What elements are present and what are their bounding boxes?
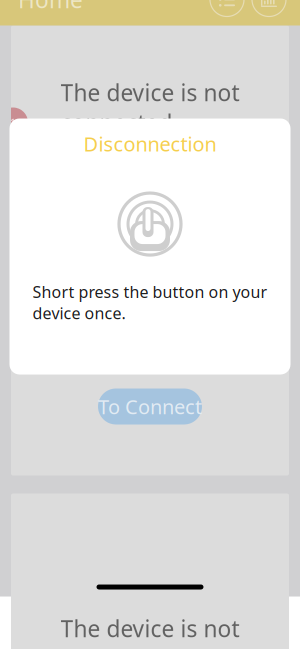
staticText: The device is not connected <box>60 613 239 649</box>
staticText: The device is not connected <box>60 77 239 138</box>
staticText: 1 <box>9 114 17 131</box>
staticText: Disconnection <box>83 130 216 157</box>
staticText: Short press the button on your device on… <box>32 281 267 324</box>
button[interactable]: Home <box>14 0 87 20</box>
button[interactable]: Records list <box>210 0 244 16</box>
button[interactable]: Statistics chart <box>252 0 286 16</box>
button[interactable]: To Connect <box>98 388 202 424</box>
staticText: Home <box>18 0 83 15</box>
staticText: To Connect <box>98 393 202 420</box>
